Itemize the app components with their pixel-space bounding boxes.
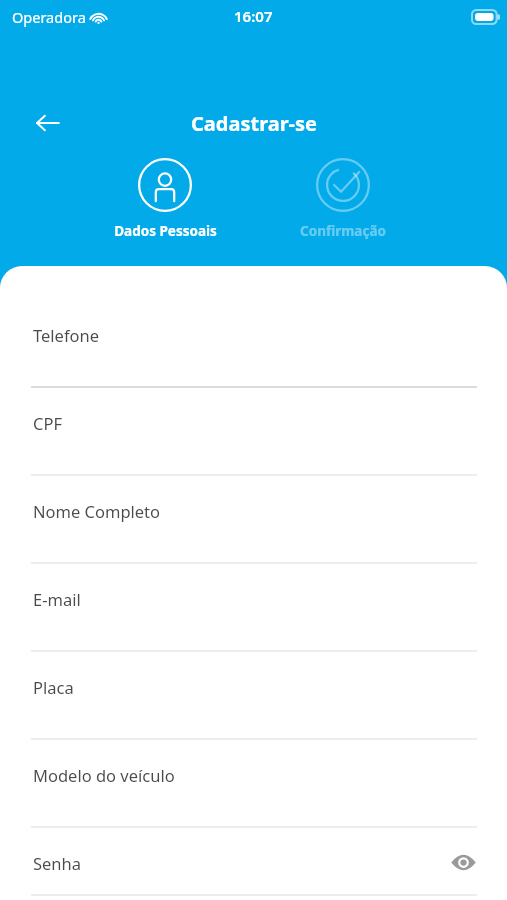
- staticText: Placa: [33, 676, 74, 698]
- staticText: Nome Completo: [33, 500, 161, 522]
- button[interactable]: Dados Pessoais: [95, 158, 235, 240]
- staticText: Senha: [33, 852, 82, 874]
- button[interactable]: E-mail: [0, 574, 507, 662]
- button[interactable]: Nome Completo: [0, 486, 507, 574]
- button[interactable]: Back: [28, 103, 68, 143]
- staticText: Operadora: [12, 7, 86, 27]
- staticText: Dados Pessoais: [114, 222, 217, 240]
- staticText: CPF: [33, 412, 62, 434]
- button[interactable]: Modelo do veículo: [0, 750, 507, 838]
- button[interactable]: Placa: [0, 662, 507, 750]
- staticText: Cadastrar-se: [191, 110, 317, 137]
- staticText: E-mail: [33, 588, 81, 610]
- staticText: Modelo do veículo: [33, 764, 175, 786]
- staticText: Telefone: [33, 324, 100, 346]
- staticText: Confirmação: [300, 222, 386, 240]
- button[interactable]: Show password: [445, 844, 481, 880]
- staticText: 16:07: [234, 6, 273, 26]
- button[interactable]: CPF: [0, 398, 507, 486]
- button[interactable]: Telefone: [0, 310, 507, 398]
- button[interactable]: Senha: [0, 838, 507, 900]
- button[interactable]: Confirmação: [273, 158, 413, 240]
